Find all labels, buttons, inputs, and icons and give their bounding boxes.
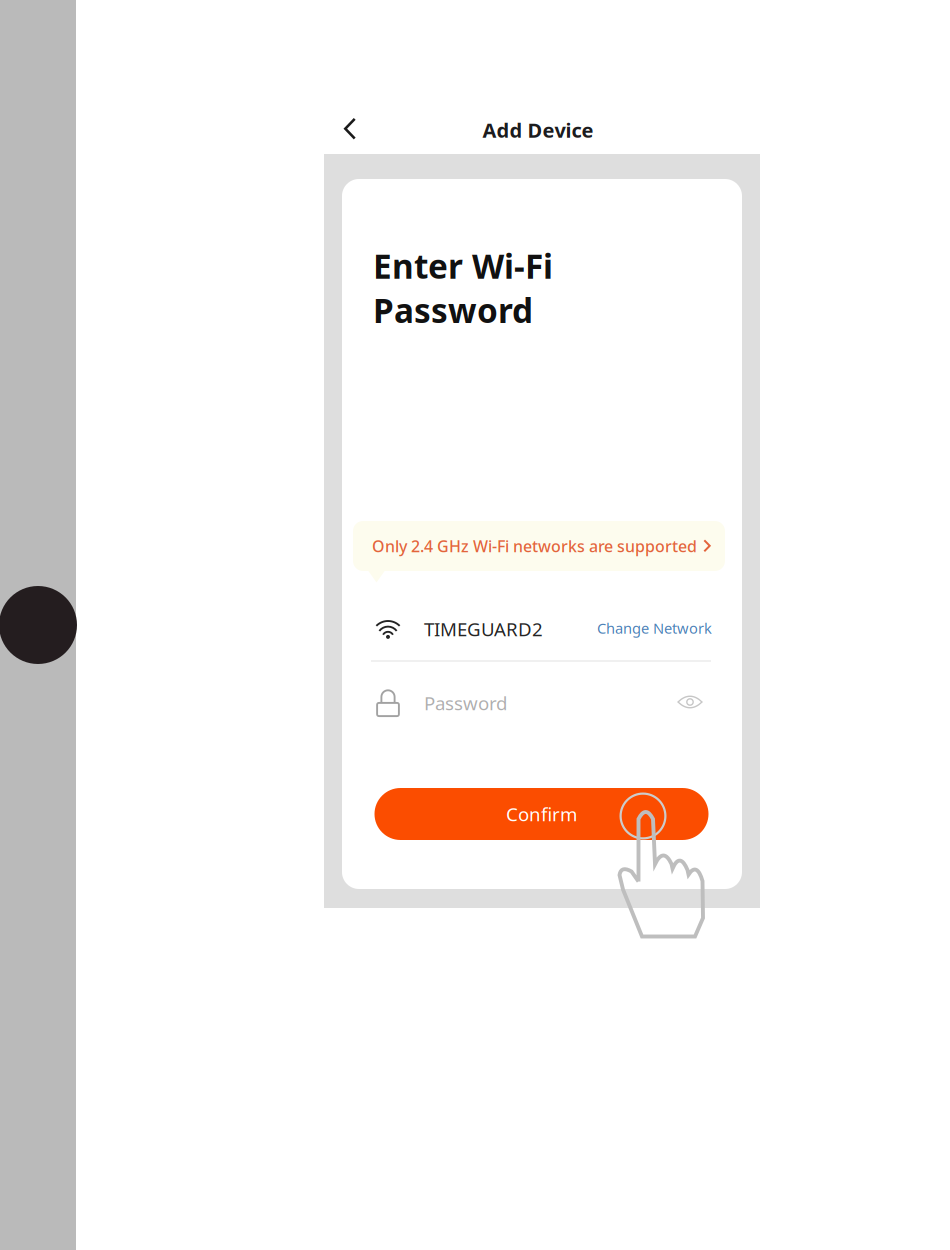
button[interactable]: Back — [326, 105, 374, 153]
staticText: Password — [373, 288, 533, 332]
button[interactable]: Confirm — [374, 788, 708, 840]
button[interactable]: Change Network — [562, 613, 712, 643]
staticText: Enter Wi-Fi — [373, 244, 553, 288]
staticText: Only 2.4 GHz Wi-Fi networks are supporte… — [372, 535, 697, 557]
staticText: Confirm — [506, 802, 577, 826]
staticText: Add Device — [482, 117, 593, 143]
button[interactable]: Show password — [668, 682, 712, 722]
button[interactable]: Password — [424, 681, 654, 725]
button[interactable]: Only 2.4 GHz Wi-Fi networks are supporte… — [353, 521, 725, 571]
staticText: Password — [424, 691, 507, 715]
staticText: TIMEGUARD2 — [424, 617, 543, 641]
staticText: Change Network — [597, 618, 712, 638]
